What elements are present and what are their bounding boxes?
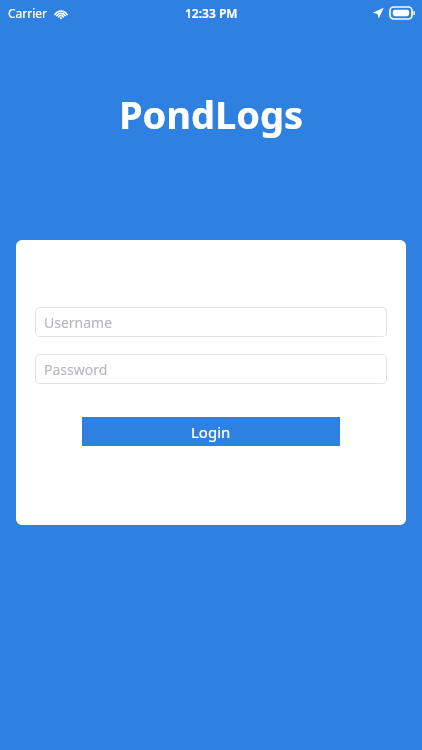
button[interactable]: Username: [35, 307, 387, 337]
button[interactable]: Login: [82, 417, 340, 446]
staticText: Password: [44, 360, 108, 379]
staticText: PondLogs: [0, 88, 422, 140]
staticText: Username: [44, 313, 113, 332]
staticText: 12:33 PM: [185, 5, 238, 21]
staticText: Carrier: [8, 5, 48, 21]
staticText: Login: [191, 422, 231, 442]
button[interactable]: Password: [35, 354, 387, 384]
